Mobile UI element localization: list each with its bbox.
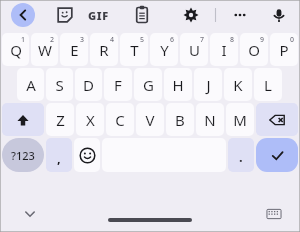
button[interactable]: P — [270, 33, 298, 66]
button[interactable]: Hide keyboard — [20, 204, 40, 224]
button[interactable]: GIF — [88, 8, 109, 23]
button[interactable]: More options — [228, 3, 252, 27]
button[interactable]: O — [240, 33, 268, 66]
staticText: , — [57, 149, 61, 167]
staticText: I — [221, 40, 227, 60]
staticText: 8 — [230, 35, 235, 45]
staticText: G — [143, 75, 154, 95]
button[interactable]: , — [46, 138, 72, 172]
staticText: 0 — [290, 35, 295, 45]
staticText: U — [189, 40, 200, 60]
staticText: 6 — [170, 35, 175, 45]
button[interactable]: A — [17, 68, 44, 101]
button[interactable]: G — [134, 68, 162, 101]
button[interactable]: Backspace — [256, 103, 298, 136]
staticText: O — [248, 40, 260, 60]
staticText: Z — [56, 110, 65, 130]
staticText: 3 — [80, 35, 85, 45]
button[interactable]: Enter — [256, 138, 298, 172]
button[interactable]: Clipboard — [131, 4, 153, 26]
button[interactable]: R — [90, 33, 118, 66]
staticText: 9 — [260, 35, 265, 45]
staticText: K — [233, 75, 243, 95]
button[interactable]: Stickers — [54, 4, 76, 26]
staticText: L — [264, 75, 272, 95]
button[interactable]: N — [196, 103, 224, 136]
staticText: M — [233, 110, 247, 130]
button[interactable]: Back — [11, 3, 35, 27]
staticText: 7 — [200, 35, 205, 45]
button[interactable]: X — [76, 103, 104, 136]
button[interactable]: Switch keyboard — [266, 206, 282, 222]
button[interactable]: Y — [150, 33, 178, 66]
staticText: S — [55, 75, 64, 95]
staticText: J — [206, 75, 211, 95]
button[interactable]: Voice input — [268, 4, 290, 26]
staticText: D — [83, 75, 94, 95]
button[interactable]: J — [194, 68, 222, 101]
button[interactable]: M — [226, 103, 254, 136]
staticText: H — [172, 75, 184, 95]
staticText: V — [145, 110, 155, 130]
button[interactable]: Emoji — [74, 138, 100, 172]
button[interactable]: V — [136, 103, 164, 136]
staticText: 2 — [50, 35, 55, 45]
staticText: R — [99, 40, 109, 60]
staticText: ?123 — [11, 148, 35, 163]
staticText: 1 — [21, 35, 26, 45]
staticText: 5 — [140, 35, 145, 45]
button[interactable]: S — [46, 68, 73, 101]
button[interactable]: I — [210, 33, 238, 66]
staticText: F — [114, 75, 122, 95]
staticText: 4 — [110, 35, 115, 45]
button[interactable]: Q — [2, 33, 29, 66]
button[interactable]: C — [106, 103, 134, 136]
button[interactable]: Shift — [2, 103, 44, 136]
staticText: T — [130, 40, 139, 60]
staticText: P — [279, 40, 289, 60]
staticText: . — [239, 148, 243, 166]
button[interactable]: . — [228, 138, 254, 172]
button[interactable]: E — [60, 33, 88, 66]
button[interactable]: K — [224, 68, 252, 101]
button[interactable]: U — [180, 33, 208, 66]
staticText: A — [26, 75, 36, 95]
staticText: Q — [10, 40, 22, 60]
staticText: GIF — [88, 8, 109, 23]
staticText: B — [175, 110, 185, 130]
button[interactable]: B — [166, 103, 194, 136]
button[interactable]: Z — [46, 103, 74, 136]
staticText: W — [38, 40, 52, 60]
button[interactable]: D — [75, 68, 102, 101]
staticText: E — [70, 40, 79, 60]
button[interactable]: H — [164, 68, 192, 101]
button[interactable]: F — [104, 68, 132, 101]
staticText: C — [115, 110, 125, 130]
staticText: X — [86, 110, 95, 130]
staticText: N — [204, 110, 216, 130]
staticText: Y — [160, 40, 169, 60]
button[interactable]: ?123 — [2, 138, 44, 172]
button[interactable]: Settings — [180, 4, 202, 26]
button[interactable]: T — [120, 33, 148, 66]
button[interactable]: L — [254, 68, 282, 101]
button[interactable]: W — [31, 33, 58, 66]
